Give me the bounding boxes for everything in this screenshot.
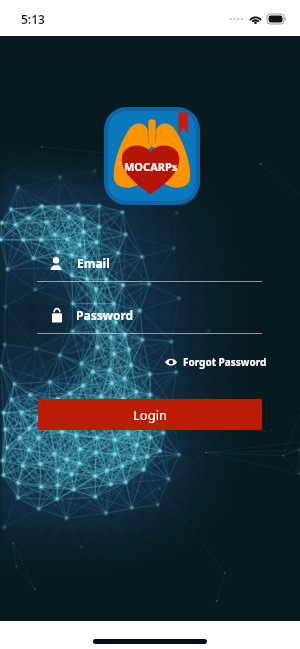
staticText: Forgot Password <box>183 355 267 369</box>
staticText: Email <box>77 255 110 271</box>
button[interactable]: Login <box>38 399 262 430</box>
staticText: Password <box>76 307 134 323</box>
staticText: 5:13 <box>21 11 45 27</box>
other: Show password <box>165 358 177 366</box>
staticText: Login <box>133 406 168 424</box>
staticText: MOCARPs <box>124 159 178 174</box>
button[interactable]: Password <box>0 307 300 323</box>
button[interactable]: Email <box>0 255 300 271</box>
button[interactable]: Show password <box>165 355 267 369</box>
